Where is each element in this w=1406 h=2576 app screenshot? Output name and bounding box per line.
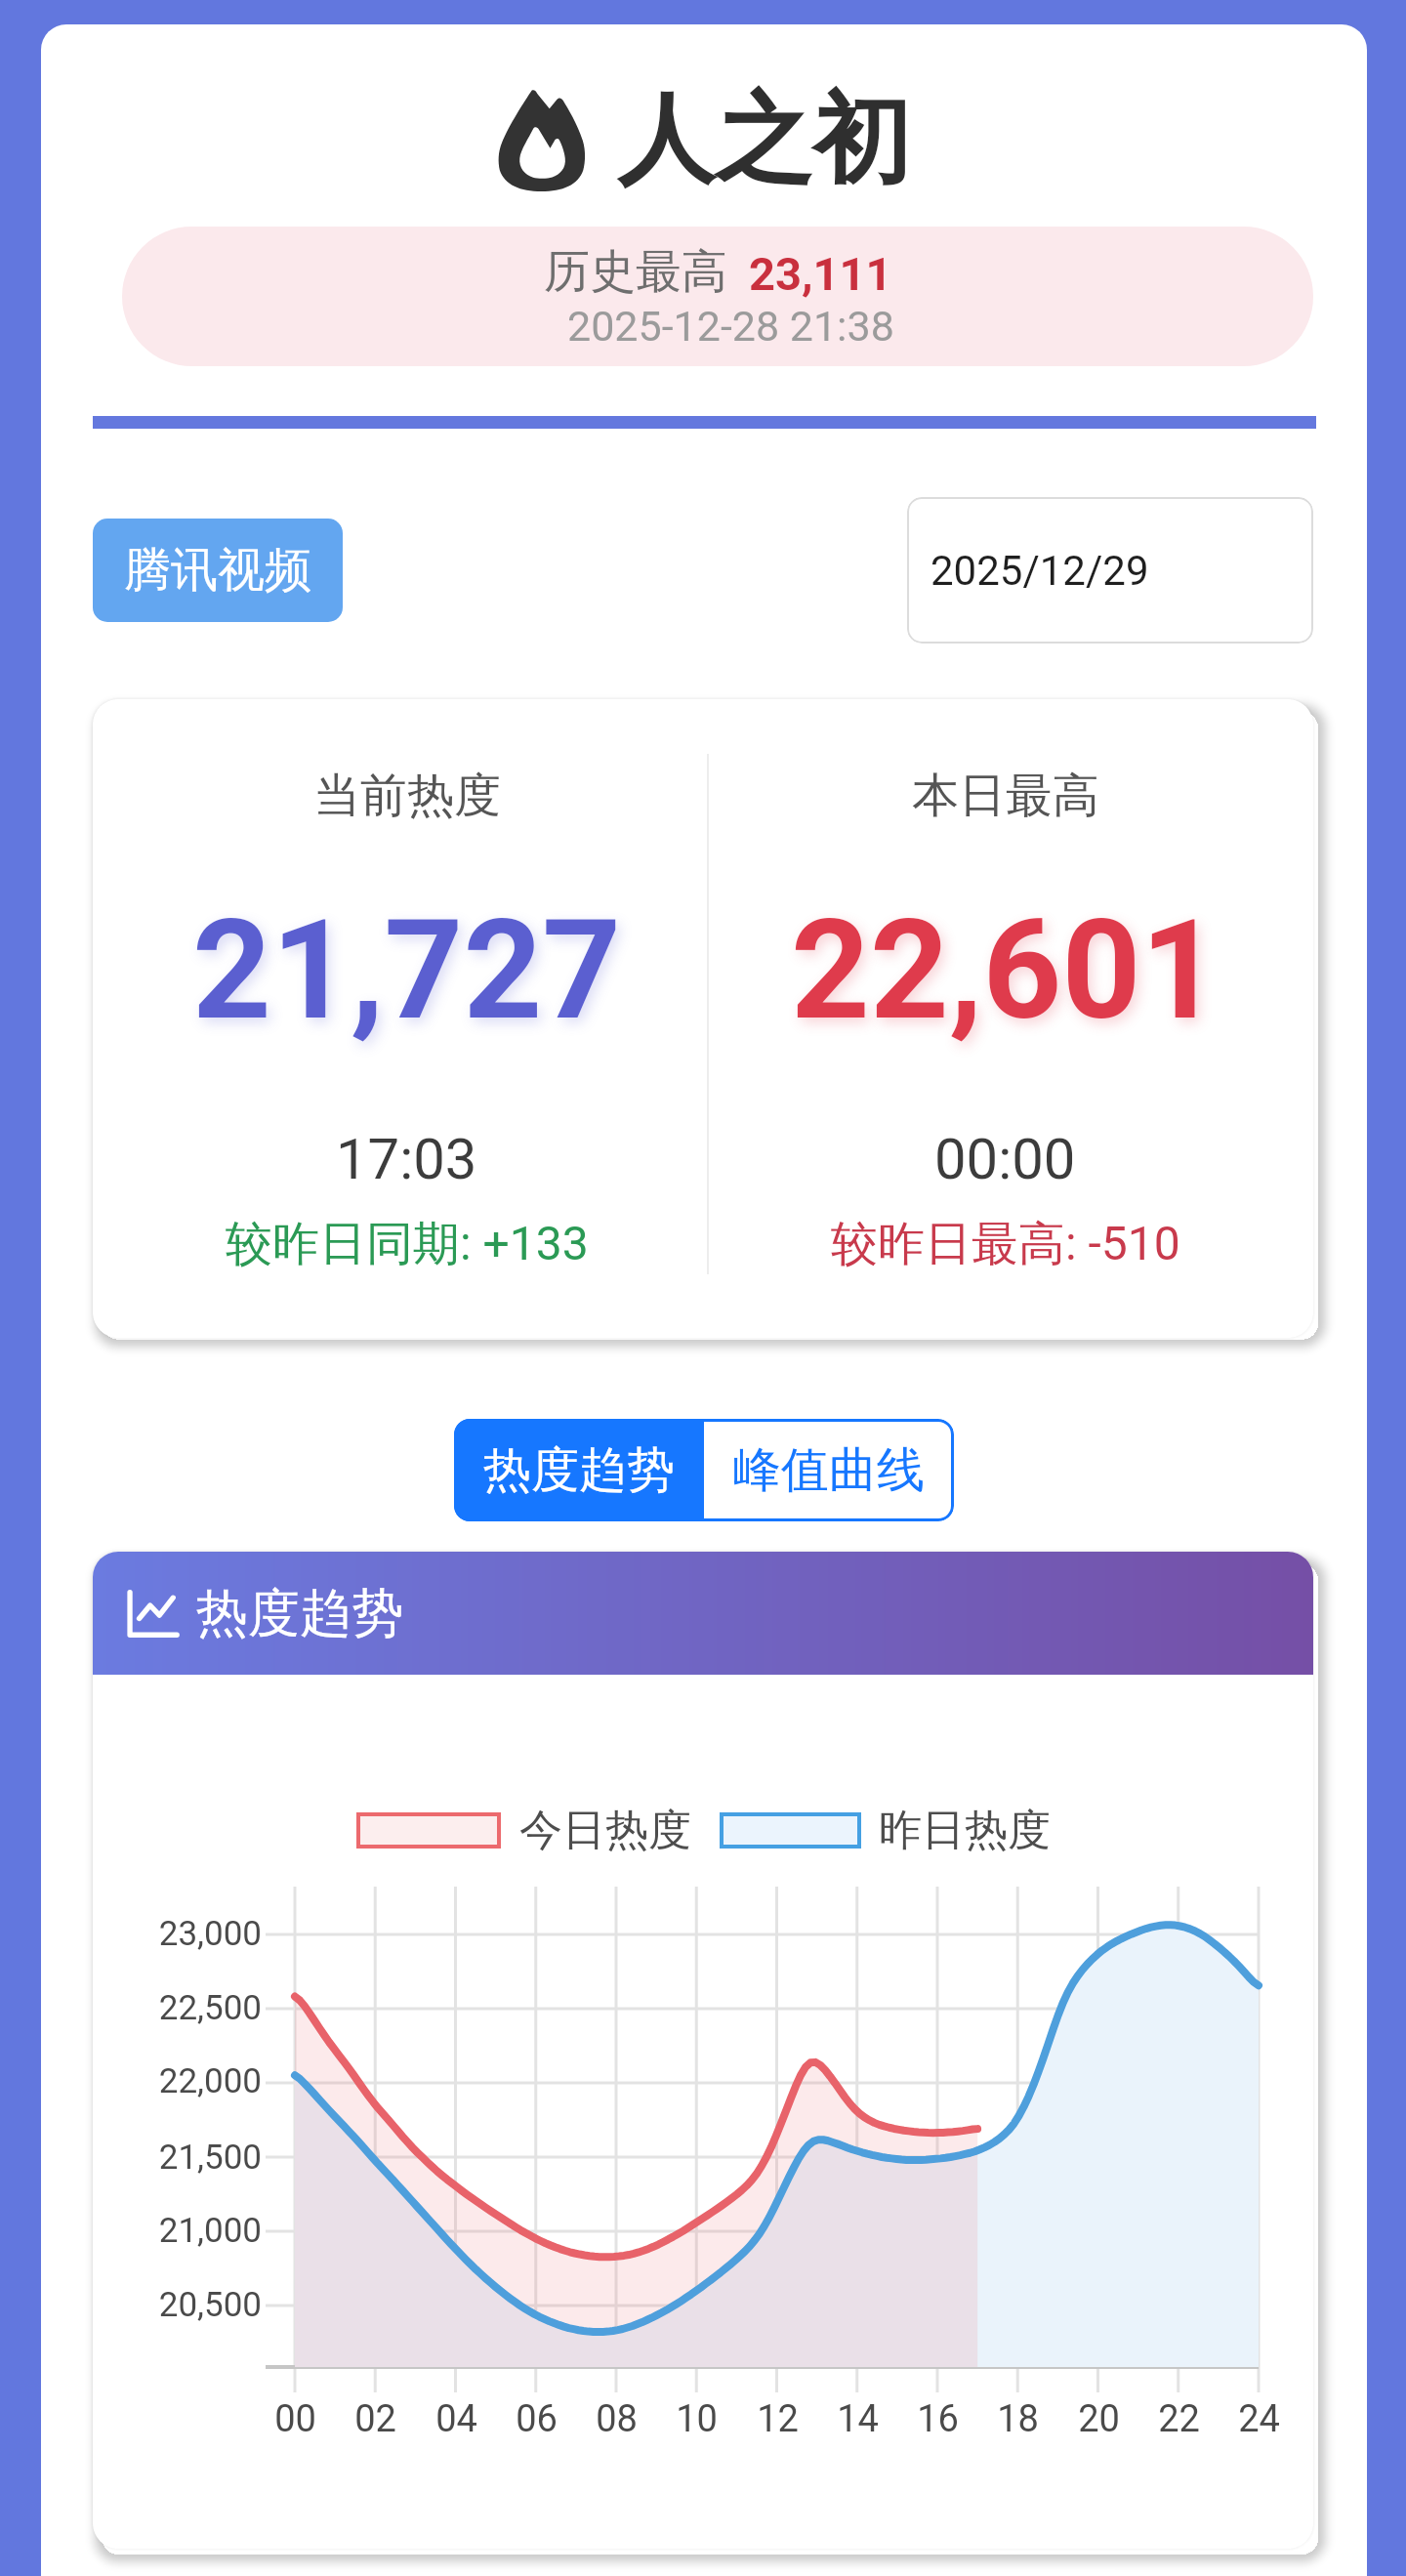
- staticText: 热度趋势: [483, 1440, 675, 1501]
- staticText: 23,000: [158, 1914, 262, 1954]
- staticText: 17:03: [336, 1126, 477, 1192]
- staticText: 23,111: [749, 247, 892, 301]
- staticText: 20: [1078, 2397, 1120, 2441]
- staticText: 16: [917, 2397, 959, 2441]
- staticText: 06: [516, 2397, 558, 2441]
- staticText: 2025/12/29: [930, 547, 1149, 595]
- staticText: 12: [757, 2397, 799, 2441]
- button[interactable]: 腾讯视频: [93, 519, 343, 622]
- staticText: 较昨日同期: +133: [226, 1215, 589, 1273]
- staticText: 21,500: [158, 2138, 262, 2178]
- staticText: 21,727: [192, 890, 622, 1051]
- button[interactable]: 2025/12/29: [907, 497, 1313, 644]
- staticText: 10: [676, 2397, 718, 2441]
- staticText: 本日最高: [912, 767, 1099, 825]
- staticText: 热度趋势: [196, 1581, 403, 1646]
- staticText: 04: [435, 2397, 477, 2441]
- staticText: 较昨日最高: -510: [831, 1215, 1180, 1273]
- staticText: 22,500: [158, 1988, 262, 2028]
- staticText: 腾讯视频: [124, 541, 311, 600]
- staticText: 00:00: [934, 1126, 1076, 1192]
- staticText: 08: [596, 2397, 638, 2441]
- staticText: 22: [1158, 2397, 1200, 2441]
- staticText: 2025-12-28 21:38: [567, 302, 894, 351]
- staticText: 22,601: [791, 890, 1220, 1051]
- staticText: 02: [354, 2397, 396, 2441]
- staticText: 人之初: [617, 79, 910, 202]
- staticText: 14: [837, 2397, 879, 2441]
- button[interactable]: 峰值曲线: [704, 1419, 954, 1521]
- staticText: 18: [997, 2397, 1039, 2441]
- staticText: 今日热度: [519, 1804, 691, 1857]
- staticText: 历史最高: [544, 243, 727, 301]
- staticText: 21,000: [158, 2211, 262, 2251]
- staticText: 00: [274, 2397, 316, 2441]
- staticText: 20,500: [158, 2285, 262, 2325]
- staticText: 昨日热度: [879, 1804, 1051, 1857]
- button[interactable]: 热度趋势: [454, 1419, 704, 1521]
- staticText: 24: [1238, 2397, 1280, 2441]
- staticText: 22,000: [158, 2061, 262, 2101]
- staticText: 峰值曲线: [733, 1440, 925, 1501]
- staticText: 当前热度: [313, 767, 501, 825]
